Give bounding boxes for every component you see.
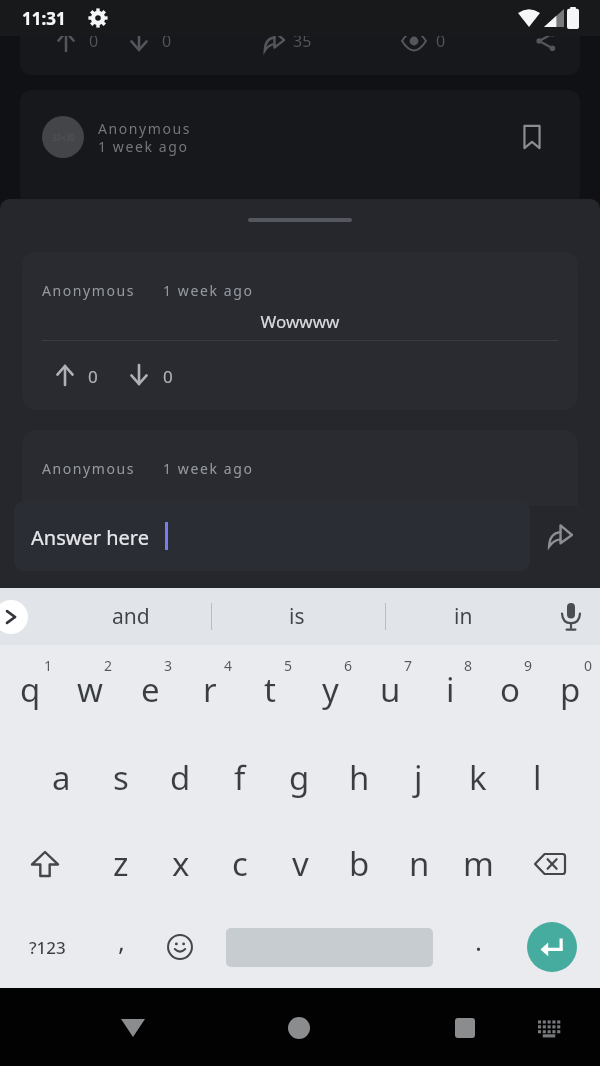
staticText: s [113,755,129,800]
staticText: and [112,602,150,631]
button[interactable]: in [408,588,518,645]
staticText: l [533,755,542,800]
staticText: g [289,755,310,800]
staticText: is [289,602,305,631]
staticText: 2 [104,656,113,675]
button[interactable] [15,834,75,894]
staticText: 7 [404,656,413,675]
staticText: x [172,841,190,886]
staticText: , [118,923,125,958]
staticText: 1 week ago [163,281,254,300]
staticText: v [292,841,309,886]
staticText: . [475,923,482,958]
button[interactable]: k [448,742,508,812]
staticText: ?123 [29,936,66,959]
button[interactable]: m [448,828,508,898]
staticText: z [113,841,129,886]
staticText: 30×30 [52,132,75,143]
button[interactable]: r [180,654,240,724]
button[interactable]: p [540,654,600,724]
staticText: o [500,667,520,712]
button[interactable]: , [91,910,151,970]
button[interactable]: s [91,742,151,812]
staticText: 0 [163,365,173,388]
button[interactable]: t [240,654,300,724]
button[interactable]: l [507,742,567,812]
staticText: 1 week ago [98,137,189,156]
button[interactable] [0,600,28,634]
button[interactable]: and [76,588,186,645]
staticText: 6 [344,656,353,675]
staticText: 0 [89,30,99,52]
button[interactable] [111,1006,155,1050]
button[interactable]: h [329,742,389,812]
staticText: i [446,667,455,712]
staticText: u [380,667,401,712]
staticText: 35 [293,30,312,52]
staticText: Anonymous [42,459,136,478]
button[interactable]: n [389,828,449,898]
staticText: a [52,755,71,800]
button[interactable]: Anonymous [22,252,578,410]
button[interactable] [538,514,582,558]
staticText: b [349,841,370,886]
staticText: y [322,667,339,712]
button[interactable]: is [242,588,352,645]
button[interactable]: z [91,828,151,898]
button[interactable]: ?123 [17,917,77,977]
staticText: in [454,602,473,631]
staticText: 0 [584,656,593,675]
staticText: f [234,755,246,800]
button[interactable] [520,834,580,894]
staticText: r [203,667,217,712]
button[interactable]: a [31,742,91,812]
staticText: m [463,841,494,886]
button[interactable]: o [480,654,540,724]
button[interactable]: f [210,742,270,812]
button[interactable] [527,922,577,972]
button[interactable]: c [210,828,270,898]
staticText: 8 [464,656,473,675]
button[interactable]: u [360,654,420,724]
button[interactable]: v [270,828,330,898]
button[interactable]: y [300,654,360,724]
staticText: 4 [224,656,233,675]
staticText: 0 [88,365,98,388]
button[interactable]: e [120,654,180,724]
button[interactable]: w [60,654,120,724]
staticText: w [77,667,103,712]
button[interactable]: d [150,742,210,812]
staticText: Anonymous [98,119,192,138]
staticText: h [349,755,370,800]
staticText: Anonymous [42,281,136,300]
button[interactable] [548,594,594,640]
staticText: 5 [284,656,293,675]
button[interactable]: b [329,828,389,898]
staticText: 3 [164,656,173,675]
staticText: 1 week ago [163,459,254,478]
staticText: p [560,667,581,712]
staticText: 1 [44,656,53,675]
button[interactable] [443,1006,487,1050]
button[interactable]: Answer here [14,501,530,571]
staticText: 0 [162,30,172,52]
button[interactable] [527,1006,571,1050]
button[interactable] [277,1006,321,1050]
staticText: k [469,755,487,800]
button[interactable] [160,927,200,967]
staticText: c [232,841,248,886]
staticText: d [170,755,191,800]
button[interactable]: . [448,910,508,970]
button[interactable]: g [269,742,329,812]
button[interactable]: j [388,742,448,812]
staticText: t [264,667,276,712]
staticText: Answer here [31,524,149,551]
staticText: 0 [436,30,446,52]
staticText: e [141,667,160,712]
button[interactable]: i [420,654,480,724]
staticText: Wowwww [22,310,578,333]
staticText: q [20,667,41,712]
button[interactable]: x [151,828,211,898]
button[interactable]: q [0,654,60,724]
